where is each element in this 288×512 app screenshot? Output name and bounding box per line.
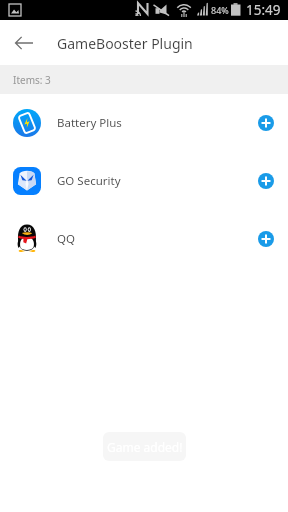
staticText: Items: 3	[13, 73, 51, 87]
staticText: Battery Plus	[57, 115, 122, 131]
button[interactable]: Add GO Security	[248, 163, 284, 199]
button[interactable]: Add QQ	[248, 221, 284, 257]
staticText: GO Security	[57, 173, 121, 189]
button[interactable]: Add Battery Plus	[248, 105, 284, 141]
staticText: GameBooster Plugin	[57, 34, 193, 53]
button[interactable]: Back	[2, 21, 46, 65]
staticText: 15:49	[246, 1, 281, 19]
staticText: QQ	[57, 231, 75, 247]
staticText: Game added!	[107, 439, 183, 455]
button[interactable]: QQ	[0, 210, 288, 268]
staticText: 84%	[211, 4, 229, 16]
button[interactable]: GO Security	[0, 152, 288, 210]
button[interactable]: Battery Plus	[0, 94, 288, 152]
